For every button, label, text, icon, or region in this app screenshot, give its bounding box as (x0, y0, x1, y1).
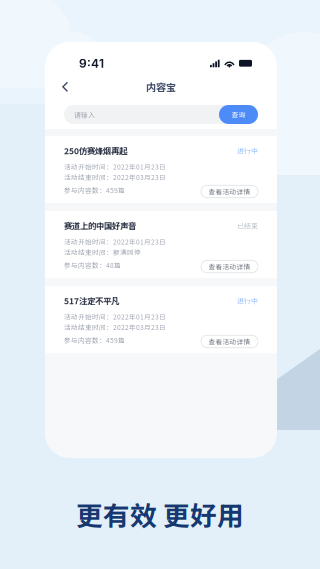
staticText: 内容宝 (146, 80, 176, 94)
staticText: 参与内容数：459篇 (64, 335, 125, 345)
button[interactable]: 查询 (219, 105, 258, 124)
button[interactable]: 查看活动详情 (201, 332, 258, 348)
staticText: 活动开始时间：2022年01月23日 (64, 312, 166, 321)
staticText: 参与内容数：459篇 (64, 185, 125, 195)
staticText: 9:41 (79, 56, 104, 70)
staticText: 进行中 (237, 295, 258, 305)
button[interactable]: 250仿赛烽烟再起 (45, 136, 277, 203)
staticText: 活动结束时间：2022年03月23日 (64, 322, 166, 332)
staticText: 请输入 (74, 109, 95, 119)
staticText: 活动结束时间：额满则停 (64, 247, 141, 257)
staticText: 活动开始时间：2022年01月23日 (64, 237, 166, 246)
staticText: 参与内容数：48篇 (64, 260, 121, 270)
staticText: 250仿赛烽烟再起 (64, 144, 127, 157)
staticText: 查看活动详情 (208, 187, 250, 196)
staticText: 赛道上的中国好声音 (64, 219, 136, 232)
staticText: 更有效 更好用 (76, 495, 244, 533)
staticText: 活动开始时间：2022年01月23日 (64, 162, 166, 171)
staticText: 已结束 (237, 220, 258, 230)
button[interactable]: 赛道上的中国好声音 (45, 211, 277, 278)
staticText: 进行中 (237, 145, 258, 155)
button[interactable]: 查看活动详情 (201, 182, 258, 198)
button[interactable]: 查看活动详情 (201, 257, 258, 273)
button[interactable]: Back (57, 76, 74, 97)
staticText: 查看活动详情 (208, 262, 250, 271)
staticText: 查询 (231, 109, 245, 119)
staticText: 517注定不平凡 (64, 294, 119, 307)
staticText: 查看活动详情 (208, 337, 250, 346)
button[interactable]: 517注定不平凡 (45, 286, 277, 353)
staticText: 活动结束时间：2022年03月23日 (64, 172, 166, 182)
